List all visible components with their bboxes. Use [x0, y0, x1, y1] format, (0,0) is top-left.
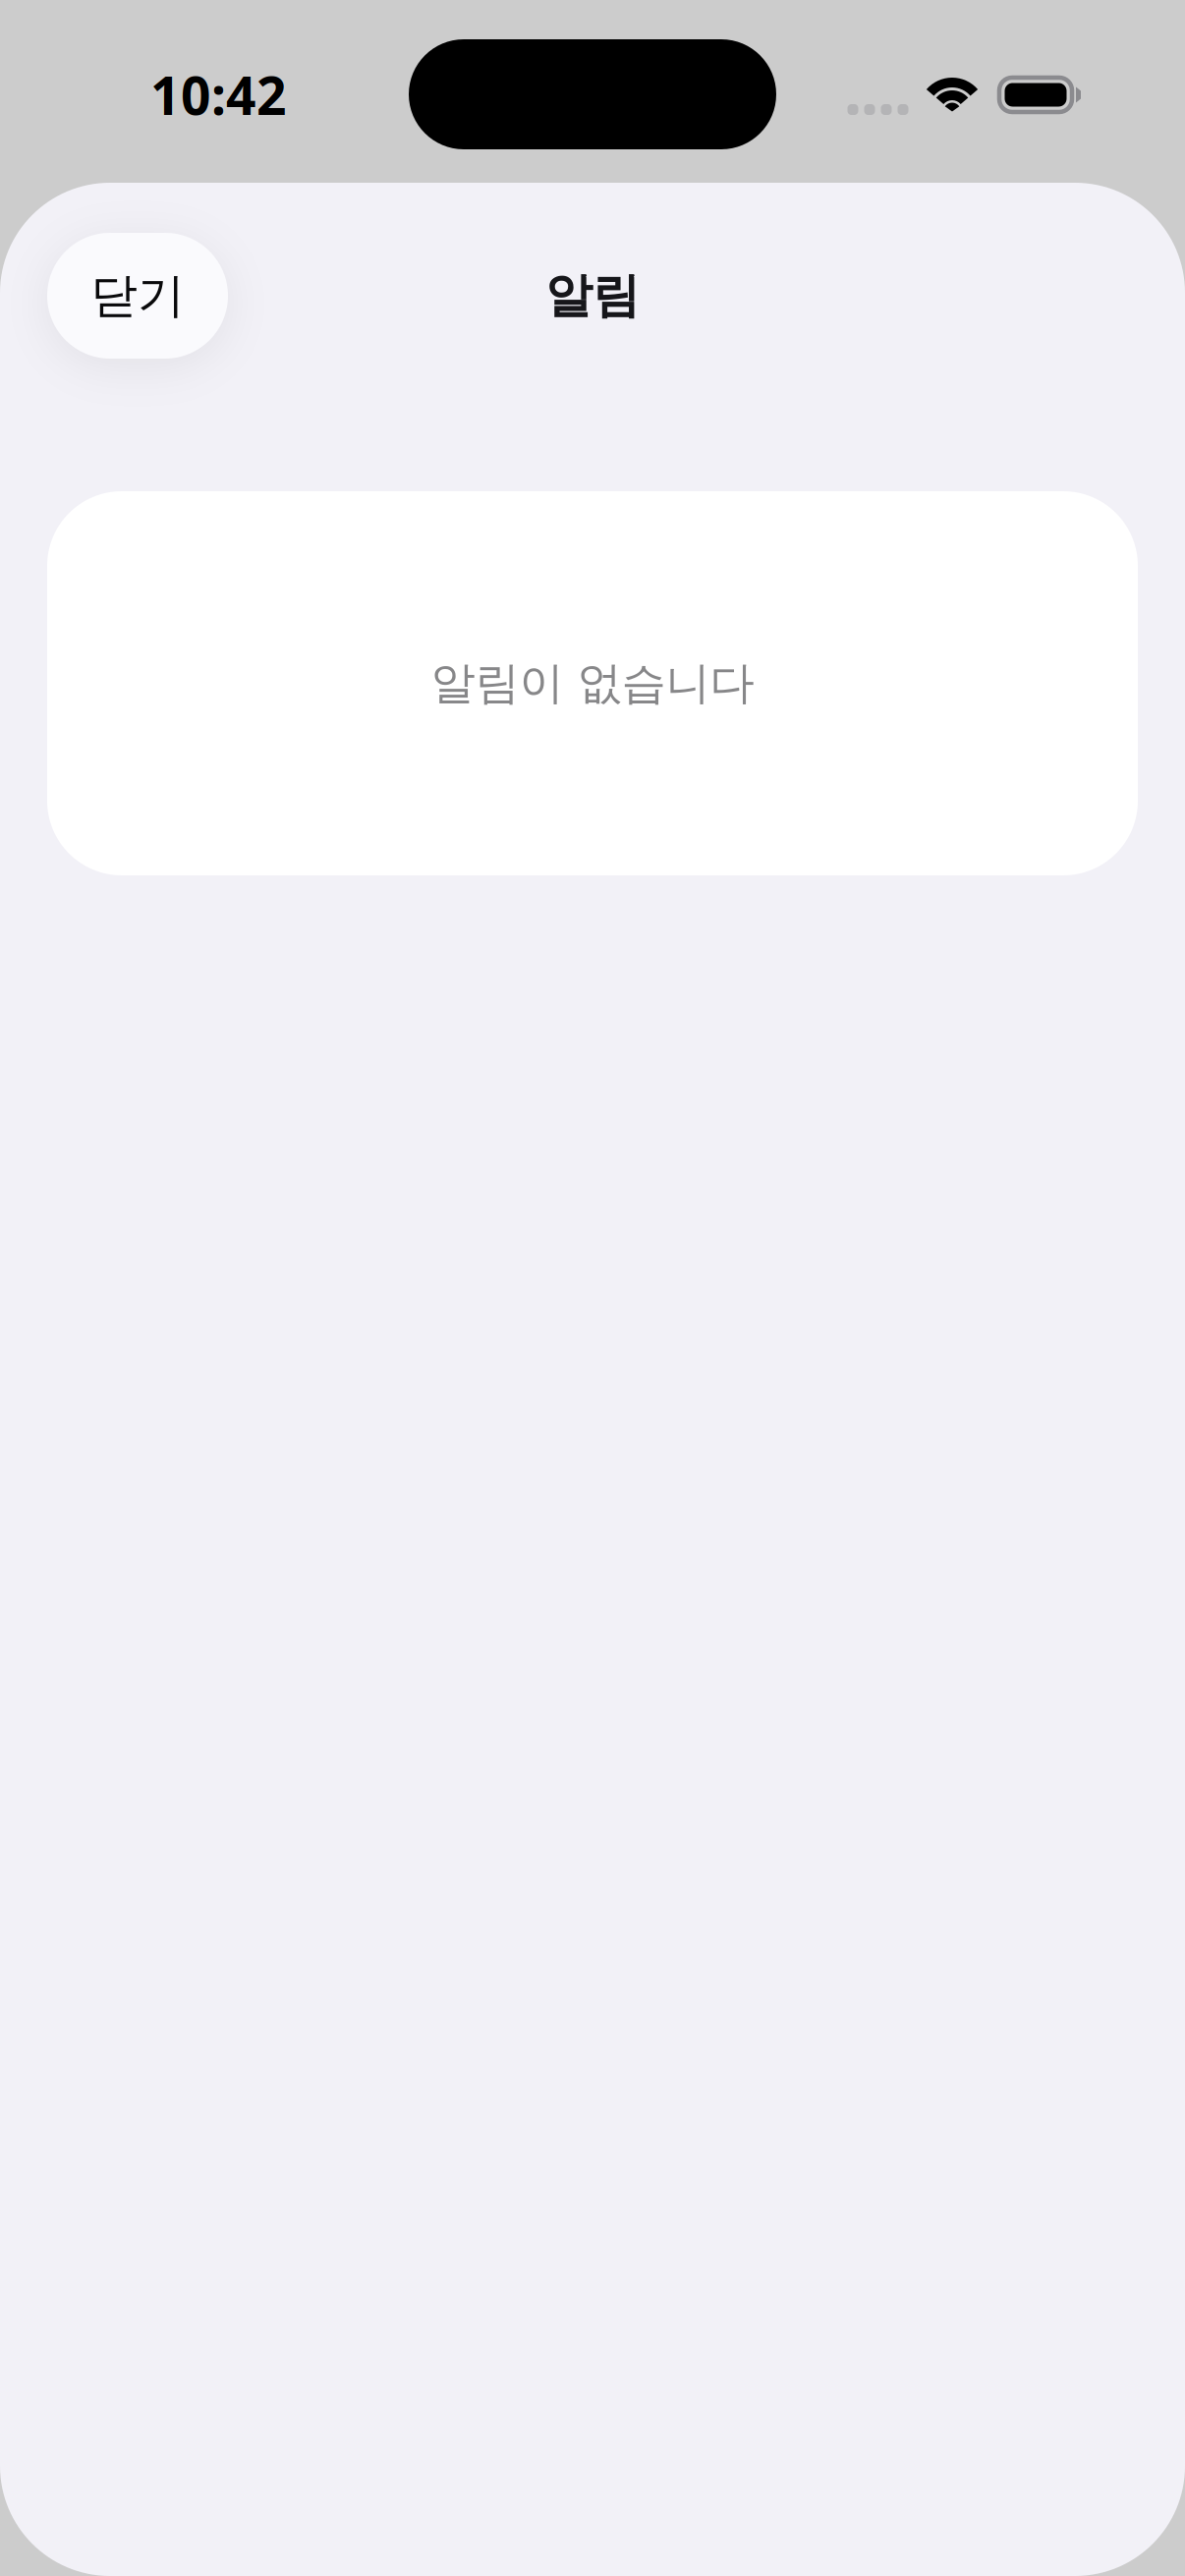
button[interactable]: 닫기 [47, 233, 228, 359]
staticText: 닫기 [90, 267, 185, 325]
staticText: 알림이 없습니다 [431, 656, 754, 711]
staticText: 알림 [545, 267, 640, 325]
staticText: 10:42 [150, 60, 287, 129]
